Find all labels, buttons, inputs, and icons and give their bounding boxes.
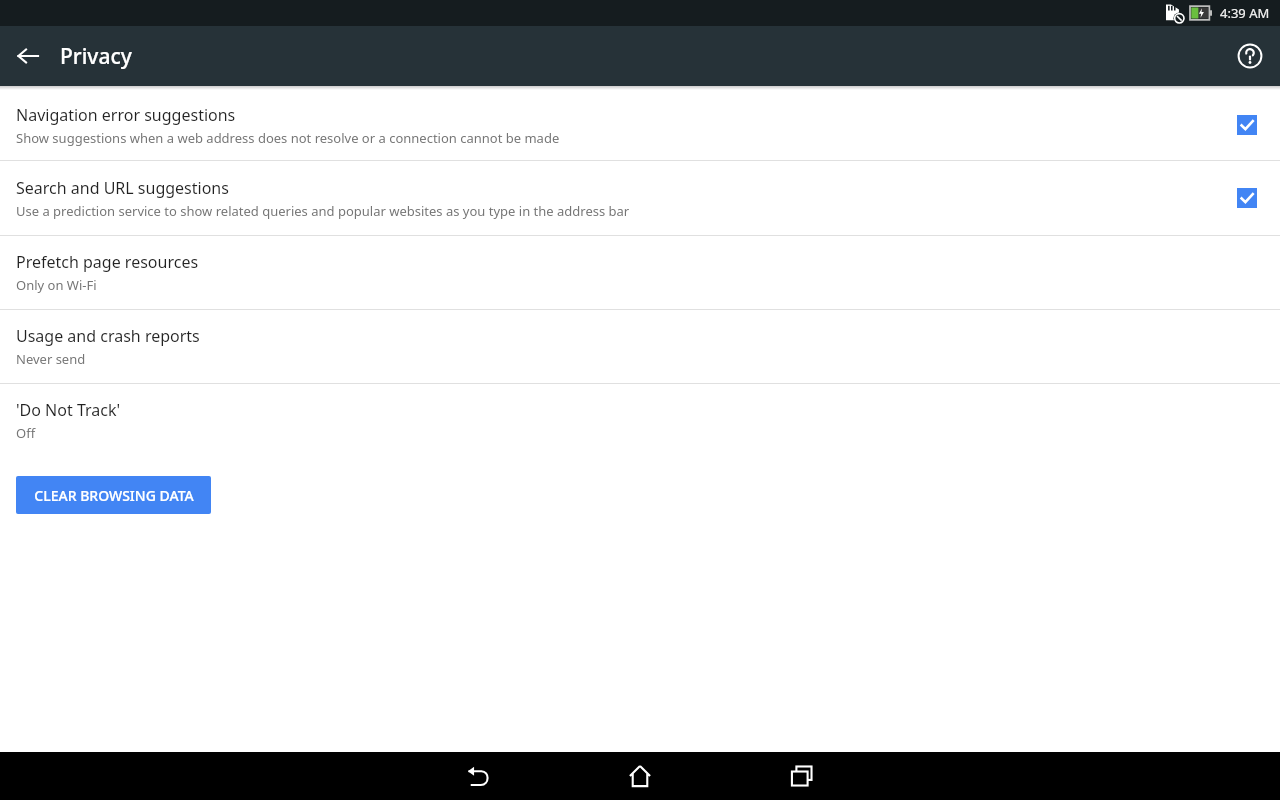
staticText: Search and URL suggestions: [16, 177, 229, 199]
button[interactable]: Help: [1228, 34, 1272, 78]
button[interactable]: Toggle Search and URL suggestions: [1226, 177, 1268, 219]
button[interactable]: Toggle Navigation error suggestions: [1226, 104, 1268, 146]
button[interactable]: Prefetch page resources: [0, 236, 1280, 309]
staticText: Only on Wi-Fi: [16, 276, 97, 294]
staticText: Show suggestions when a web address does…: [16, 129, 560, 147]
button[interactable]: Usage and crash reports: [0, 310, 1280, 383]
button[interactable]: CLEAR BROWSING DATA: [16, 476, 211, 514]
staticText: 4:39 AM: [1220, 4, 1270, 22]
staticText: Usage and crash reports: [16, 325, 200, 347]
staticText: Prefetch page resources: [16, 251, 199, 273]
staticText: CLEAR BROWSING DATA: [34, 486, 194, 505]
staticText: 'Do Not Track': [16, 399, 121, 421]
button[interactable]: Navigation error suggestions: [0, 90, 1280, 160]
staticText: Never send: [16, 350, 86, 368]
staticText: Privacy: [60, 42, 132, 71]
button[interactable]: Home: [614, 752, 666, 800]
button[interactable]: Search and URL suggestions: [0, 161, 1280, 235]
button[interactable]: Recent apps: [776, 752, 828, 800]
staticText: Navigation error suggestions: [16, 104, 236, 126]
staticText: Use a prediction service to show related…: [16, 202, 630, 220]
staticText: Off: [16, 424, 36, 442]
button[interactable]: Back: [452, 752, 504, 800]
button[interactable]: 'Do Not Track': [0, 384, 1280, 457]
button[interactable]: Back: [8, 36, 48, 76]
